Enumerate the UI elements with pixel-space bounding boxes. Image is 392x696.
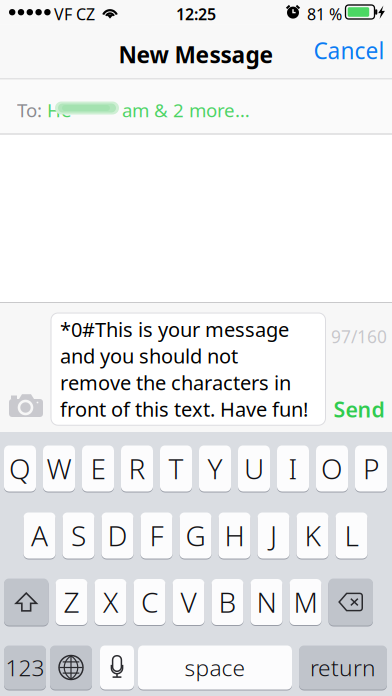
staticText: *0#This is your message and you should n… bbox=[60, 316, 308, 422]
button[interactable]: Camera bbox=[1, 385, 51, 425]
button[interactable]: Dictation bbox=[100, 645, 134, 690]
staticText: V bbox=[180, 583, 196, 621]
button[interactable]: 123 bbox=[4, 645, 46, 690]
staticText: I bbox=[288, 450, 297, 487]
staticText: am & 2 more… bbox=[122, 97, 250, 122]
staticText: F bbox=[149, 517, 163, 554]
staticText: 123 bbox=[5, 652, 44, 682]
staticText: P bbox=[363, 450, 379, 487]
staticText: K bbox=[304, 517, 320, 554]
staticText: B bbox=[218, 583, 236, 621]
staticText: Cancel bbox=[313, 35, 384, 65]
button[interactable]: X bbox=[94, 578, 126, 625]
staticText: D bbox=[107, 517, 127, 554]
button[interactable]: O bbox=[316, 445, 348, 492]
button[interactable]: Send bbox=[326, 390, 392, 428]
staticText: O bbox=[321, 450, 343, 487]
button[interactable]: A bbox=[23, 512, 55, 559]
button[interactable]: C bbox=[133, 578, 165, 625]
staticText: 97/160 bbox=[331, 325, 387, 348]
button[interactable]: H bbox=[218, 512, 250, 559]
staticText: M bbox=[293, 583, 317, 621]
button[interactable]: M bbox=[289, 578, 321, 625]
button[interactable]: D bbox=[101, 512, 133, 559]
staticText: W bbox=[46, 450, 71, 487]
button[interactable]: J bbox=[257, 512, 289, 559]
button[interactable]: Y bbox=[199, 445, 231, 492]
staticText: Z bbox=[63, 583, 79, 621]
button[interactable]: W bbox=[43, 445, 75, 492]
staticText: C bbox=[141, 583, 158, 621]
button[interactable]: V bbox=[172, 578, 204, 625]
button[interactable]: L bbox=[335, 512, 367, 559]
button[interactable]: Cancel bbox=[311, 30, 387, 70]
staticText: X bbox=[103, 583, 118, 621]
staticText: R bbox=[128, 450, 145, 487]
staticText: VF CZ bbox=[54, 3, 95, 25]
button[interactable]: T bbox=[160, 445, 192, 492]
staticText: return bbox=[310, 652, 376, 682]
staticText: Y bbox=[207, 450, 222, 487]
staticText: He bbox=[47, 97, 72, 122]
button[interactable]: G bbox=[179, 512, 211, 559]
button[interactable]: K bbox=[296, 512, 328, 559]
button[interactable]: Delete bbox=[328, 578, 373, 626]
button[interactable]: space bbox=[138, 645, 292, 690]
staticText: Send bbox=[333, 395, 384, 423]
staticText: G bbox=[185, 517, 205, 554]
staticText: E bbox=[90, 450, 105, 487]
staticText: U bbox=[244, 450, 264, 487]
staticText: J bbox=[270, 517, 277, 554]
staticText: 12:25 bbox=[176, 3, 216, 25]
staticText: A bbox=[31, 517, 48, 554]
staticText: L bbox=[344, 517, 358, 554]
staticText: N bbox=[256, 583, 276, 621]
staticText: 81 % bbox=[307, 3, 342, 25]
button[interactable]: F bbox=[140, 512, 172, 559]
button[interactable]: B bbox=[211, 578, 243, 625]
button[interactable]: return bbox=[299, 645, 387, 690]
staticText: New Message bbox=[118, 39, 273, 70]
button[interactable]: Z bbox=[55, 578, 87, 625]
staticText: space bbox=[184, 652, 245, 682]
button[interactable]: S bbox=[62, 512, 94, 559]
button[interactable]: P bbox=[355, 445, 387, 492]
button[interactable]: N bbox=[250, 578, 282, 625]
button[interactable]: I bbox=[277, 445, 309, 492]
staticText: S bbox=[71, 517, 86, 554]
staticText: Q bbox=[9, 450, 31, 487]
button[interactable]: U bbox=[238, 445, 270, 492]
staticText: To: bbox=[17, 97, 42, 122]
staticText: H bbox=[224, 517, 244, 554]
button[interactable]: E bbox=[82, 445, 114, 492]
button[interactable]: R bbox=[121, 445, 153, 492]
button[interactable]: Next keyboard bbox=[50, 645, 92, 690]
staticText: T bbox=[168, 450, 183, 487]
button[interactable]: Shift bbox=[4, 578, 48, 626]
button[interactable]: Q bbox=[4, 445, 36, 492]
